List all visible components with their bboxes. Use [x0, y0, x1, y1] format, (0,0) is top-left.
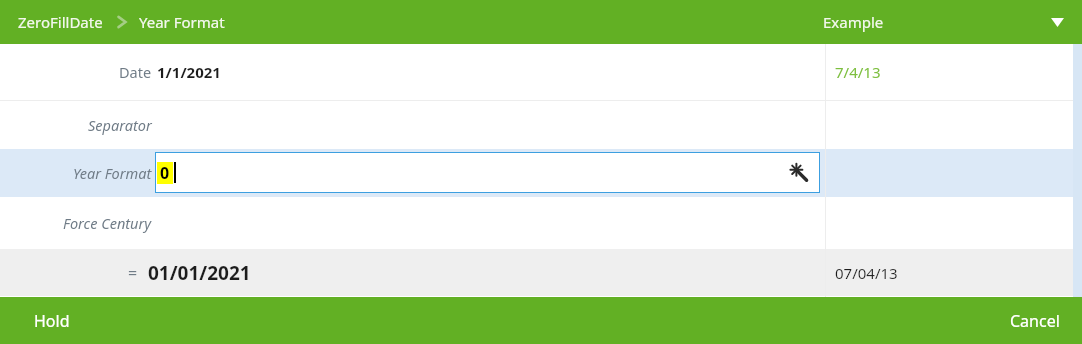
staticText: Year Format: [73, 163, 152, 183]
staticText: Example: [823, 12, 884, 32]
other: Show menu: [1044, 9, 1070, 35]
staticText: 07/04/13: [835, 263, 898, 283]
button[interactable]: Cancel: [1010, 297, 1060, 344]
button[interactable]: Hold: [34, 297, 70, 344]
button[interactable]: Year Format: [0, 149, 1082, 197]
staticText: Year Format: [139, 12, 225, 32]
button[interactable]: Year Format: [139, 12, 225, 32]
button[interactable]: Date: [0, 44, 1082, 100]
staticText: ZeroFillDate: [18, 12, 103, 32]
staticText: 0: [160, 162, 170, 184]
button[interactable]: Force Century: [0, 197, 1082, 249]
button[interactable]: Auto format: [786, 160, 812, 186]
button[interactable]: ZeroFillDate: [18, 12, 103, 32]
button[interactable]: =: [0, 249, 1082, 296]
staticText: Date: [119, 62, 152, 82]
staticText: 7/4/13: [835, 62, 881, 82]
button[interactable]: 0: [155, 152, 820, 193]
button[interactable]: Example: [823, 0, 1082, 44]
staticText: Cancel: [1010, 310, 1060, 332]
staticText: Separator: [88, 115, 152, 135]
staticText: 01/01/2021: [148, 260, 251, 286]
staticText: =: [128, 262, 138, 284]
button[interactable]: Separator: [0, 101, 1082, 149]
staticText: Force Century: [63, 213, 152, 233]
staticText: Hold: [34, 310, 70, 332]
staticText: 1/1/2021: [157, 62, 221, 82]
